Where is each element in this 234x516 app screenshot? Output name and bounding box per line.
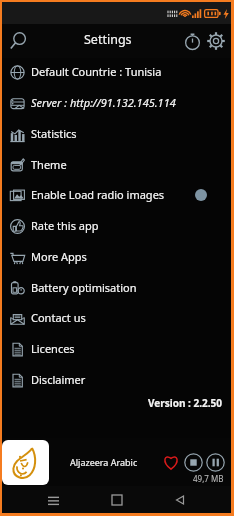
button[interactable]: Default Countrie : Tunisia (2, 56, 231, 87)
staticText: Enable Load radio images (31, 187, 165, 202)
button[interactable]: Licences (2, 333, 231, 364)
staticText: Disclaimer (31, 372, 86, 387)
button[interactable]: Favourite (161, 452, 181, 472)
button[interactable]: Home (105, 488, 129, 512)
button[interactable]: Statistics (2, 118, 231, 149)
staticText: Theme (31, 157, 67, 172)
button[interactable]: More Apps (2, 241, 231, 272)
staticText: Version : 2.2.50 (2, 396, 222, 410)
staticText: Licences (31, 341, 75, 356)
button[interactable]: Disclaimer (2, 364, 231, 395)
staticText: Default Countrie : Tunisia (31, 64, 162, 79)
button[interactable]: Pause (205, 452, 225, 472)
button[interactable]: Battery optimisation (2, 272, 231, 302)
staticText: More Apps (31, 249, 87, 264)
staticText: Settings (84, 31, 132, 48)
staticText: Rate this app (31, 218, 99, 233)
button[interactable]: Search (5, 28, 31, 54)
staticText: Contact us (31, 310, 86, 325)
staticText: Battery optimisation (31, 280, 137, 295)
button[interactable]: Settings (204, 29, 228, 53)
button[interactable]: Enable Load radio images (2, 179, 231, 210)
staticText: 49,7 MB (193, 473, 224, 484)
button[interactable]: Rate this app (2, 210, 231, 241)
button[interactable]: Theme (2, 149, 231, 179)
button[interactable]: Server : http://91.132.145.114 (2, 87, 231, 118)
button[interactable]: Back (168, 488, 192, 512)
button[interactable]: Station artwork (2, 440, 49, 485)
button[interactable]: Sleep timer (180, 29, 204, 53)
button[interactable]: Contact us (2, 302, 231, 333)
staticText: Server : http://91.132.145.114 (31, 95, 176, 110)
button[interactable]: Stop (183, 452, 203, 472)
staticText: Statistics (31, 126, 77, 141)
staticText: Aljazeera Arabic (70, 456, 138, 468)
button[interactable]: Menu (41, 488, 65, 512)
button[interactable]: Toggle (190, 184, 212, 206)
